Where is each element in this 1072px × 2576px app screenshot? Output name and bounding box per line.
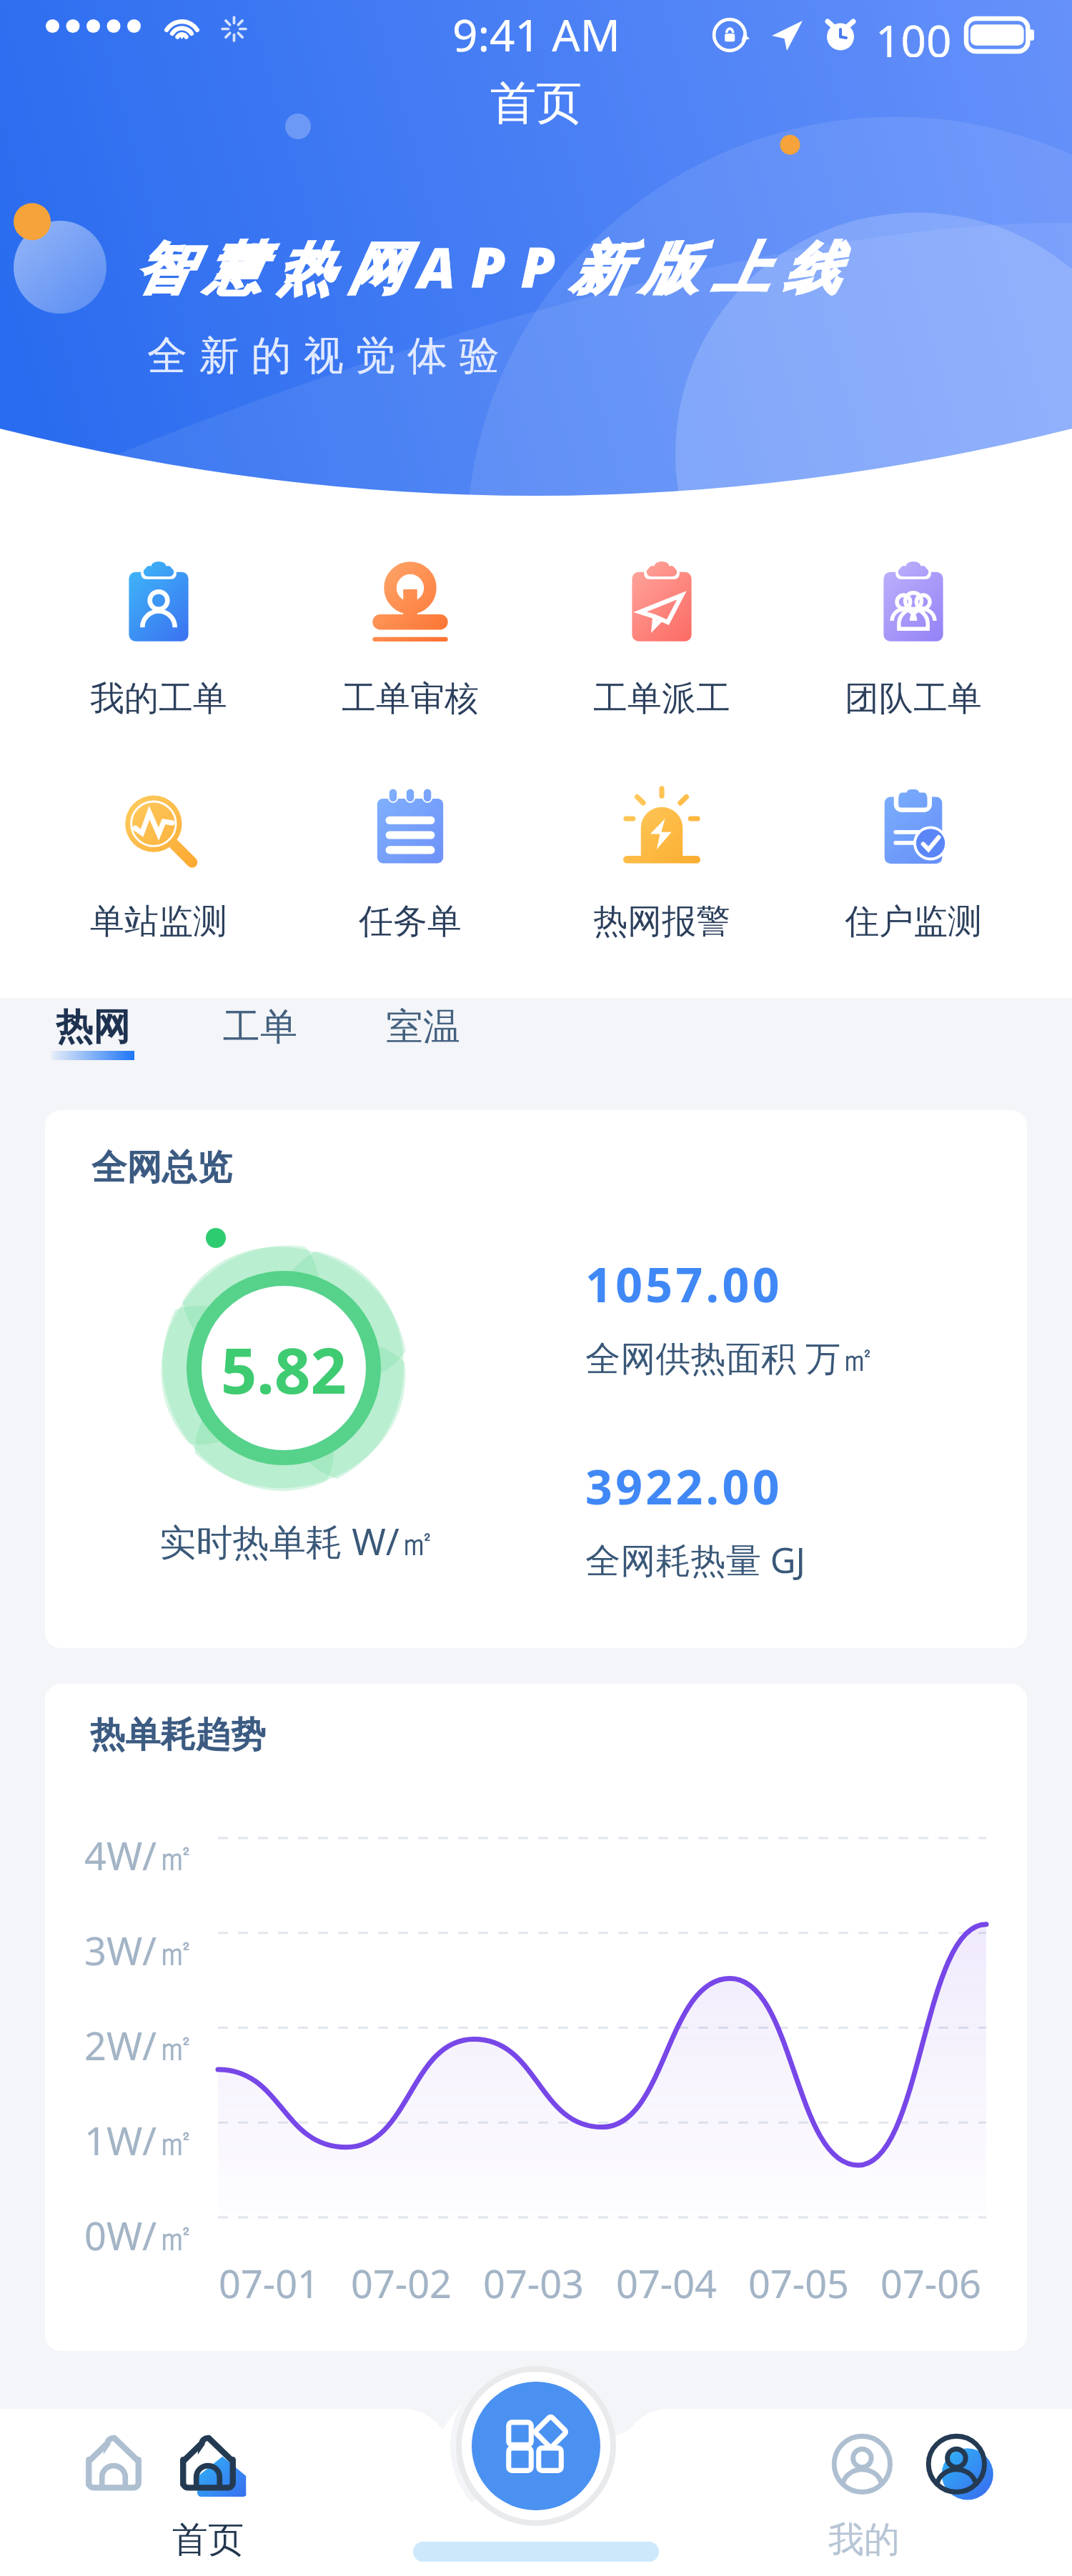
staticText: 07-05 xyxy=(748,2257,849,2310)
staticText: 全新的视觉体验 xyxy=(147,331,512,381)
staticText: 07-06 xyxy=(880,2257,981,2310)
button[interactable]: 工单审核 xyxy=(284,559,536,720)
staticText: 工单派工 xyxy=(593,677,730,720)
button[interactable]: 住户监测 xyxy=(788,782,1039,943)
staticText: 3W/㎡ xyxy=(84,1924,196,1977)
button[interactable]: 我的 xyxy=(828,2435,994,2562)
staticText: 2W/㎡ xyxy=(84,2019,196,2072)
staticText: 全网供热面积 万㎡ xyxy=(585,1333,876,1381)
button[interactable]: 单站监测 xyxy=(33,782,284,943)
staticText: 首页 xyxy=(490,74,582,132)
staticText: 0W/㎡ xyxy=(84,2209,196,2262)
staticText: 实时热单耗 W/㎡ xyxy=(159,1516,437,1566)
staticText: 07-04 xyxy=(616,2257,717,2310)
staticText: 4W/㎡ xyxy=(84,1829,196,1882)
button[interactable]: 室温 xyxy=(366,1004,480,1051)
staticText: 热网 xyxy=(56,1004,130,1051)
staticText: 智慧热网APP新版上线 xyxy=(134,229,855,305)
staticText: 07-03 xyxy=(483,2257,584,2310)
button[interactable]: 团队工单 xyxy=(788,559,1039,720)
staticText: 1W/㎡ xyxy=(84,2114,196,2167)
button[interactable]: 我的工单 xyxy=(33,559,284,720)
button[interactable]: 工单派工 xyxy=(536,559,788,720)
staticText: 全网耗热量 GJ xyxy=(585,1535,805,1583)
button[interactable]: 首页 xyxy=(78,2435,244,2562)
staticText: 热单耗趋势 xyxy=(90,1713,266,1757)
staticText: 3922.00 xyxy=(585,1454,783,1518)
button[interactable]: 应用 xyxy=(472,2382,600,2510)
staticText: 100 xyxy=(875,10,952,57)
staticText: 室温 xyxy=(386,1004,460,1051)
button[interactable]: 热网报警 xyxy=(536,782,788,943)
button[interactable]: 工单 xyxy=(203,1004,317,1051)
staticText: 全网总览 xyxy=(91,1146,232,1190)
staticText: 住户监测 xyxy=(845,900,982,943)
staticText: 工单审核 xyxy=(342,677,479,720)
staticText: 07-02 xyxy=(351,2257,452,2310)
staticText: 任务单 xyxy=(359,900,462,943)
staticText: 我的 xyxy=(828,2517,900,2562)
button[interactable]: 热网 xyxy=(31,1004,154,1060)
staticText: 07-01 xyxy=(219,2257,319,2310)
staticText: 团队工单 xyxy=(845,677,982,720)
staticText: 5.82 xyxy=(221,1327,347,1412)
staticText: 工单 xyxy=(223,1004,297,1051)
staticText: 9:41 AM xyxy=(452,4,620,60)
staticText: 1057.00 xyxy=(585,1252,783,1316)
staticText: 我的工单 xyxy=(90,677,227,720)
staticText: 单站监测 xyxy=(90,900,227,943)
staticText: 首页 xyxy=(172,2517,244,2562)
staticText: 热网报警 xyxy=(593,900,730,943)
button[interactable]: 任务单 xyxy=(284,782,536,943)
